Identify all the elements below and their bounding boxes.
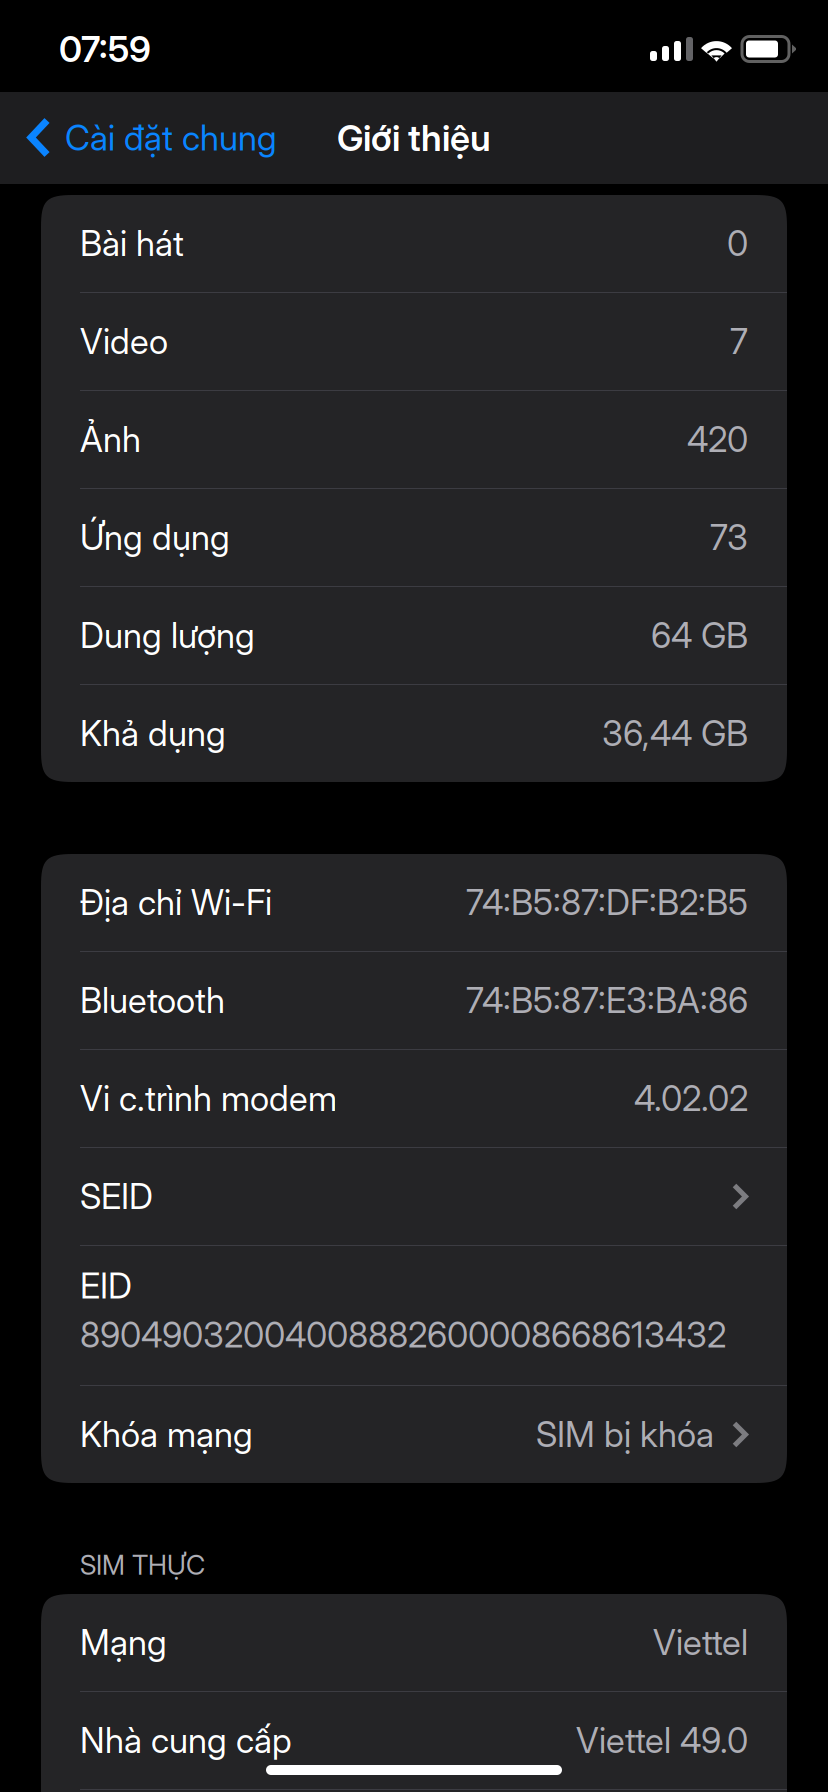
staticText: Viettel 49.0 <box>576 1719 748 1761</box>
staticText: SIM THỰC <box>80 1549 205 1581</box>
staticText: 74:B5:87:DF:B2:B5 <box>466 881 748 923</box>
button[interactable]: EID <box>41 1246 787 1385</box>
button[interactable]: Mạng <box>41 1594 787 1691</box>
button[interactable]: Bluetooth <box>41 952 787 1049</box>
staticText: Dung lượng <box>80 614 255 656</box>
staticText: SEID <box>80 1175 153 1217</box>
button[interactable]: Dung lượng <box>41 587 787 684</box>
staticText: Bluetooth <box>80 979 225 1021</box>
staticText: 73 <box>710 516 748 558</box>
staticText: Cài đặt chung <box>65 117 277 159</box>
staticText: Giới thiệu <box>337 116 491 160</box>
staticText: Mạng <box>80 1621 167 1663</box>
staticText: Viettel <box>653 1621 748 1663</box>
staticText: 64 GB <box>651 614 748 656</box>
button[interactable]: Ảnh <box>41 391 787 488</box>
button[interactable]: Ứng dụng <box>41 489 787 586</box>
button[interactable]: Video <box>41 293 787 390</box>
button[interactable]: Vi c.trình modem <box>41 1050 787 1147</box>
staticText: Nhà cung cấp <box>80 1719 292 1761</box>
staticText: Vi c.trình modem <box>80 1077 337 1119</box>
staticText: Ảnh <box>80 418 141 460</box>
button[interactable]: Bài hát <box>41 195 787 292</box>
staticText: 7 <box>730 320 748 362</box>
staticText: SIM bị khóa <box>536 1413 714 1455</box>
button[interactable]: Địa chỉ Wi-Fi <box>41 854 787 951</box>
staticText: 74:B5:87:E3:BA:86 <box>466 979 748 1021</box>
button[interactable]: Khả dụng <box>41 685 787 782</box>
staticText: Địa chỉ Wi-Fi <box>80 881 272 923</box>
staticText: 4.02.02 <box>634 1077 748 1119</box>
staticText: Bài hát <box>80 222 184 264</box>
staticText: 89049032004008882600008668613432 <box>80 1314 726 1356</box>
staticText: 0 <box>727 222 748 264</box>
button[interactable]: Cài đặt chung <box>0 92 293 184</box>
staticText: Khả dụng <box>80 712 226 754</box>
button[interactable]: Nhà cung cấp <box>41 1692 787 1789</box>
button[interactable]: Khóa mạng <box>41 1386 787 1483</box>
staticText: 420 <box>687 418 748 460</box>
staticText: 36,44 GB <box>602 712 748 754</box>
staticText: Video <box>80 320 168 362</box>
staticText: Khóa mạng <box>80 1413 253 1455</box>
button[interactable]: SEID <box>41 1148 787 1245</box>
staticText: EID <box>80 1265 132 1307</box>
staticText: 07:59 <box>59 27 151 71</box>
staticText: Ứng dụng <box>80 516 230 558</box>
